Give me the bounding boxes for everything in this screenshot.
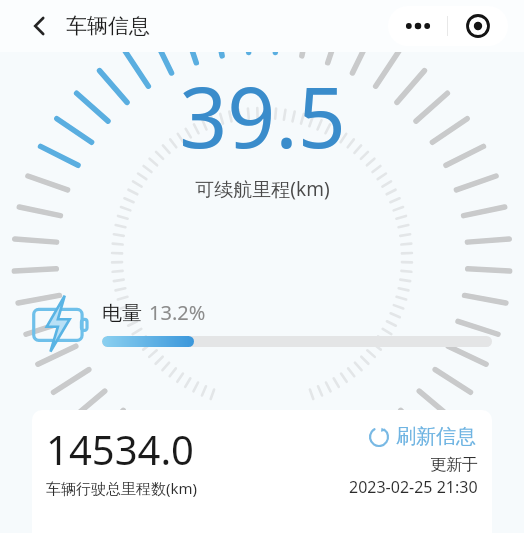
staticText: 13.2% <box>149 299 206 326</box>
staticText: 2023-02-25 21:30 <box>349 476 478 498</box>
staticText: 39.5 <box>179 58 346 172</box>
staticText: 更新于 <box>430 455 478 475</box>
staticText: 刷新信息 <box>396 424 476 449</box>
staticText: 车辆行驶总里程数(km) <box>46 478 198 498</box>
button[interactable]: Back <box>20 6 60 46</box>
staticText: 14534.0 <box>46 422 194 476</box>
button[interactable]: 刷新信息 <box>366 422 478 451</box>
staticText: 电量 <box>102 301 142 326</box>
staticText: 可续航里程(km) <box>195 176 330 202</box>
button[interactable]: More options <box>388 6 508 46</box>
staticText: 车辆信息 <box>66 13 150 39</box>
